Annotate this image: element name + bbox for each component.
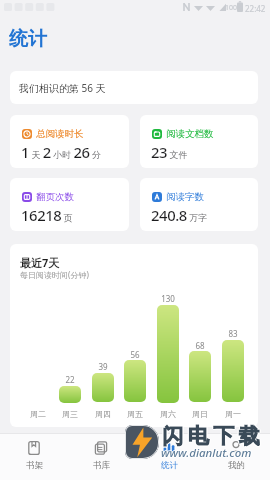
- staticText: www.dianlut.com: [160, 445, 251, 461]
- staticText: 周二: [23, 409, 53, 419]
- staticText: 最近7天: [20, 255, 60, 270]
- staticText: 翻页次数: [36, 191, 74, 203]
- staticText: 68: [185, 340, 215, 351]
- staticText: 闪电下载: [159, 423, 261, 449]
- staticText: 100%: [225, 3, 243, 13]
- staticText: 书架: [26, 460, 43, 471]
- staticText: 书库: [93, 460, 110, 471]
- button[interactable]: 翻页次数: [10, 178, 129, 231]
- button[interactable]: 书库: [77, 440, 125, 480]
- staticText: 闪电下载: [160, 422, 262, 448]
- staticText: 周三: [55, 409, 85, 419]
- staticText: 39: [88, 361, 118, 372]
- staticText: 56: [120, 349, 150, 360]
- staticText: 闪电下载: [160, 423, 262, 449]
- staticText: www.dianlut.com: [161, 445, 252, 461]
- staticText: 130: [153, 293, 183, 304]
- button[interactable]: 我们相识的第 56 天: [10, 71, 258, 104]
- staticText: 每日阅读时间(分钟): [20, 269, 89, 280]
- staticText: 周四: [88, 409, 118, 419]
- staticText: 1 天 2 小时 26 分: [21, 142, 101, 162]
- button[interactable]: 统计: [145, 440, 193, 480]
- button[interactable]: 阅读文档数: [140, 115, 258, 168]
- button[interactable]: 书架: [10, 440, 58, 480]
- staticText: 23 文件: [151, 142, 188, 162]
- staticText: 83: [218, 328, 248, 339]
- staticText: 统计: [9, 27, 47, 51]
- staticText: 周一: [218, 409, 248, 419]
- button[interactable]: 我的: [212, 440, 260, 480]
- staticText: www.dianlut.com: [161, 444, 252, 460]
- staticText: 16218 页: [21, 205, 73, 225]
- staticText: 闪电下载: [160, 424, 262, 450]
- button[interactable]: 阅读字数: [140, 178, 258, 231]
- staticText: 周五: [120, 409, 150, 419]
- staticText: 周日: [185, 409, 215, 419]
- staticText: 周六: [153, 409, 183, 419]
- staticText: 240.8 万字: [151, 205, 208, 225]
- staticText: 22:42: [245, 3, 266, 14]
- staticText: 22: [55, 374, 85, 385]
- staticText: 阅读文档数: [166, 128, 214, 140]
- staticText: 我们相识的第 56 天: [19, 81, 106, 95]
- staticText: 统计: [161, 460, 178, 471]
- staticText: 阅读字数: [166, 191, 204, 203]
- staticText: 闪电下载: [161, 423, 263, 449]
- staticText: www.dianlut.com: [162, 445, 253, 461]
- staticText: www.dianlut.com: [161, 446, 252, 462]
- staticText: 我的: [228, 460, 245, 471]
- staticText: 总阅读时长: [36, 128, 84, 140]
- button[interactable]: 总阅读时长: [10, 115, 129, 168]
